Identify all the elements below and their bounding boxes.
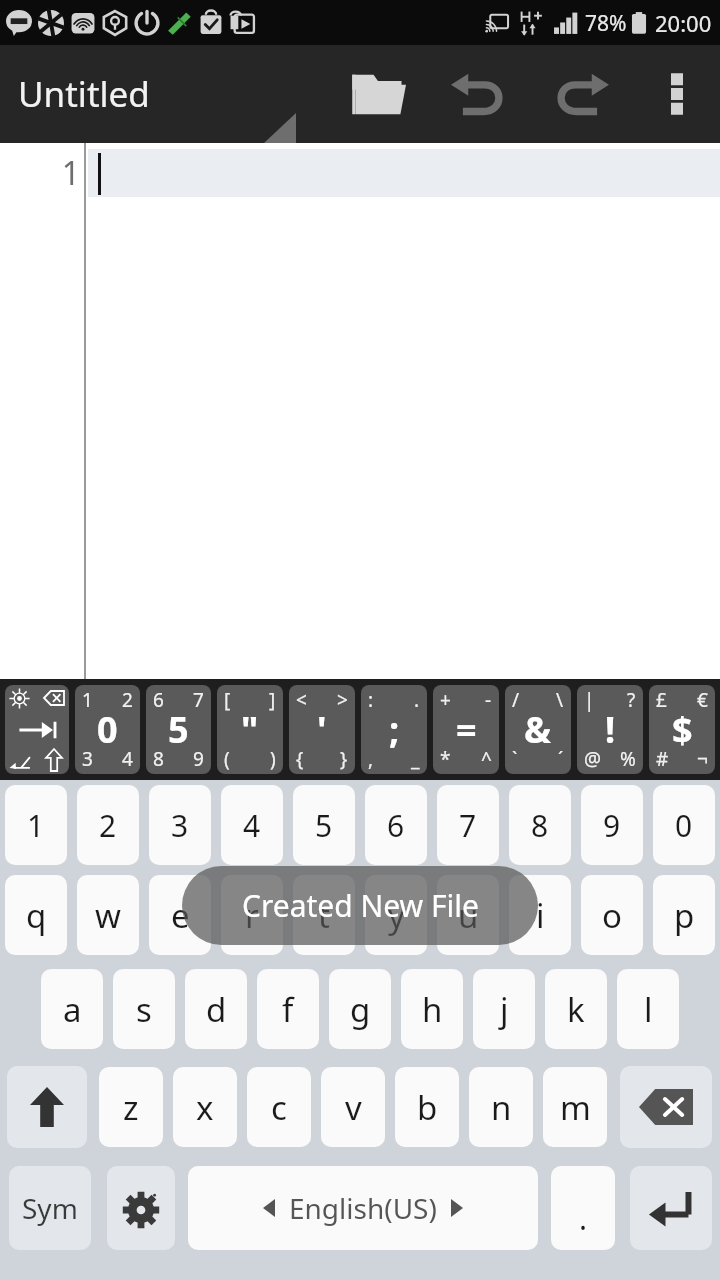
button[interactable]: 1 — [75, 685, 140, 774]
button[interactable]: a — [41, 969, 103, 1049]
staticText: c — [271, 1085, 287, 1130]
button[interactable]: z — [99, 1067, 163, 1147]
button[interactable]: q — [5, 875, 67, 955]
staticText: 0 — [97, 705, 118, 754]
button[interactable]: : — [361, 685, 427, 774]
button[interactable]: Settings — [107, 1166, 175, 1250]
staticText: t — [318, 893, 330, 938]
button[interactable]: x — [173, 1067, 237, 1147]
button[interactable]: t — [293, 875, 355, 955]
staticText: d — [206, 987, 227, 1032]
button[interactable]: d — [185, 969, 247, 1049]
staticText: : — [368, 687, 374, 713]
button[interactable]: b — [395, 1067, 459, 1147]
button[interactable]: n — [469, 1067, 533, 1147]
button[interactable]: Enter — [630, 1166, 712, 1250]
staticText: * — [440, 746, 451, 772]
staticText: 2 — [99, 805, 117, 846]
staticText: b — [417, 1085, 438, 1130]
button[interactable]: c — [247, 1067, 311, 1147]
button[interactable]: Untitled — [18, 70, 150, 118]
button[interactable]: £ — [649, 685, 715, 774]
staticText: o — [602, 893, 622, 938]
button[interactable]: 2 — [77, 785, 139, 865]
button[interactable]: u — [437, 875, 499, 955]
staticText: 3 — [82, 746, 93, 772]
button[interactable]: k — [545, 969, 607, 1049]
staticText: q — [26, 893, 47, 938]
staticText: 8 — [153, 746, 164, 772]
staticText: i — [536, 893, 545, 938]
staticText: ! — [605, 705, 616, 754]
staticText: y — [388, 893, 405, 938]
staticText: 6 — [387, 805, 405, 846]
button[interactable]: 0 — [653, 785, 715, 865]
button[interactable]: 8 — [509, 785, 571, 865]
button[interactable]: h — [401, 969, 463, 1049]
button[interactable]: 3 — [149, 785, 211, 865]
button[interactable]: r — [221, 875, 283, 955]
button[interactable]: f — [257, 969, 319, 1049]
button[interactable]: < — [289, 685, 355, 774]
staticText: ; — [389, 705, 400, 754]
button[interactable]: l — [617, 969, 679, 1049]
staticText: 5 — [168, 705, 189, 754]
button[interactable]: + — [433, 685, 499, 774]
button[interactable]: Open file — [330, 45, 426, 143]
staticText: { — [296, 746, 304, 772]
staticText: 1 — [50, 151, 80, 195]
button[interactable]: 5 — [293, 785, 355, 865]
staticText: & — [524, 705, 552, 754]
button[interactable]: j — [473, 969, 535, 1049]
button[interactable]: p — [653, 875, 715, 955]
staticText: ¬ — [697, 746, 708, 772]
button[interactable]: English(US) — [188, 1166, 538, 1250]
button[interactable]: v — [321, 1067, 385, 1147]
button[interactable]: e — [149, 875, 211, 955]
button[interactable]: | — [577, 685, 643, 774]
staticText: j — [500, 987, 509, 1032]
button[interactable]: y — [365, 875, 427, 955]
button[interactable]: s — [113, 969, 175, 1049]
staticText: [ — [224, 687, 231, 713]
button[interactable]: 6 — [365, 785, 427, 865]
button[interactable]: o — [581, 875, 643, 955]
button[interactable]: 4 — [221, 785, 283, 865]
staticText: r — [245, 893, 259, 938]
button[interactable]: Backspace — [620, 1066, 712, 1148]
button[interactable]: Sym — [9, 1166, 91, 1250]
staticText: ' — [317, 705, 327, 754]
button[interactable]: 6 — [146, 685, 211, 774]
button[interactable]: g — [329, 969, 391, 1049]
button[interactable]: i — [509, 875, 571, 955]
button[interactable]: [ — [217, 685, 283, 774]
staticText: English(US) — [289, 1189, 437, 1227]
staticText: w — [95, 893, 121, 938]
staticText: Created New File — [242, 885, 479, 926]
button[interactable]: Tab and shift — [5, 685, 69, 774]
button[interactable]: Redo — [530, 45, 634, 143]
staticText: . — [579, 1198, 588, 1239]
button[interactable]: 9 — [581, 785, 643, 865]
button[interactable]: 7 — [437, 785, 499, 865]
button[interactable]: 1 — [5, 785, 67, 865]
staticText: + — [440, 687, 451, 713]
staticText: 78% — [585, 9, 627, 38]
button[interactable]: More options — [634, 45, 720, 143]
button[interactable]: Undo — [426, 45, 530, 143]
staticText: / — [512, 687, 520, 713]
staticText: # — [656, 746, 669, 772]
button[interactable]: . — [551, 1166, 615, 1250]
staticText: ) — [270, 746, 276, 772]
staticText: g — [350, 987, 371, 1032]
staticText: v — [345, 1085, 362, 1130]
staticText: } — [340, 746, 348, 772]
staticText: % — [620, 746, 636, 772]
button[interactable]: Shift — [7, 1066, 87, 1148]
staticText: x — [196, 1085, 214, 1130]
button[interactable]: / — [505, 685, 571, 774]
staticText: 2 — [122, 687, 133, 713]
button[interactable]: m — [543, 1067, 607, 1147]
staticText: < — [296, 687, 307, 713]
button[interactable]: w — [77, 875, 139, 955]
